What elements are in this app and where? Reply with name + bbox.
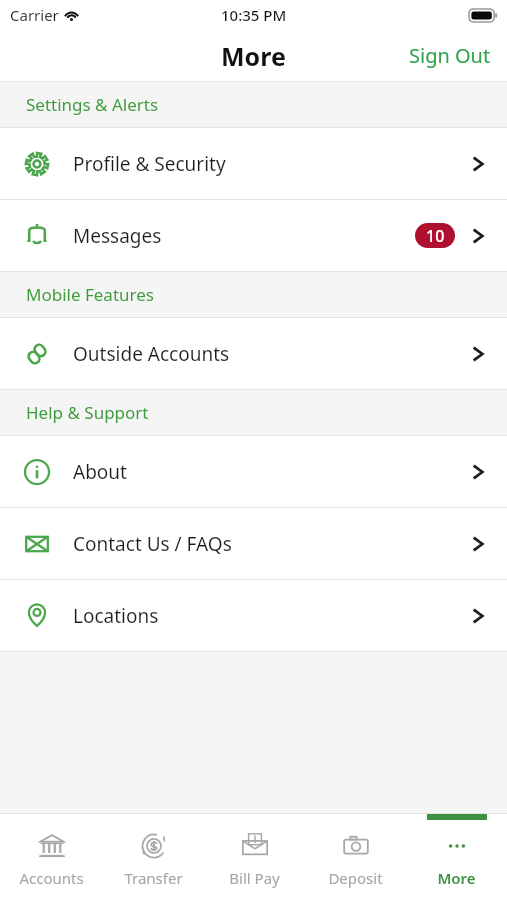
button[interactable]: Messages (0, 200, 507, 271)
button[interactable]: Locations (0, 580, 507, 651)
staticText: Contact Us / FAQs (73, 531, 232, 557)
staticText: Outside Accounts (73, 341, 230, 367)
staticText: Deposit (328, 868, 383, 888)
staticText: Bill Pay (229, 868, 280, 888)
staticText: 10 (426, 225, 445, 247)
button[interactable]: About (0, 436, 507, 507)
staticText: Help & Support (26, 401, 149, 424)
staticText: Profile & Security (73, 151, 226, 177)
button[interactable]: Accounts (0, 813, 102, 900)
staticText: More (221, 39, 286, 73)
staticText: More (437, 868, 476, 888)
staticText: Transfer (124, 868, 183, 888)
button[interactable]: Profile & Security (0, 128, 507, 199)
staticText: Carrier (10, 5, 59, 25)
staticText: Settings & Alerts (26, 93, 159, 116)
staticText: Sign Out (409, 42, 491, 69)
staticText: About (73, 459, 127, 485)
button[interactable]: Transfer (102, 813, 204, 900)
button[interactable]: Contact Us / FAQs (0, 508, 507, 579)
button[interactable]: Bill Pay (204, 813, 305, 900)
button[interactable]: More (406, 813, 507, 900)
button[interactable]: Deposit (305, 813, 406, 900)
staticText: Mobile Features (26, 283, 154, 306)
button[interactable]: Outside Accounts (0, 318, 507, 389)
button[interactable]: Sign Out (393, 34, 507, 77)
staticText: Messages (73, 223, 162, 249)
staticText: 10:35 PM (221, 5, 287, 25)
staticText: Accounts (19, 868, 84, 888)
staticText: Locations (73, 603, 159, 629)
